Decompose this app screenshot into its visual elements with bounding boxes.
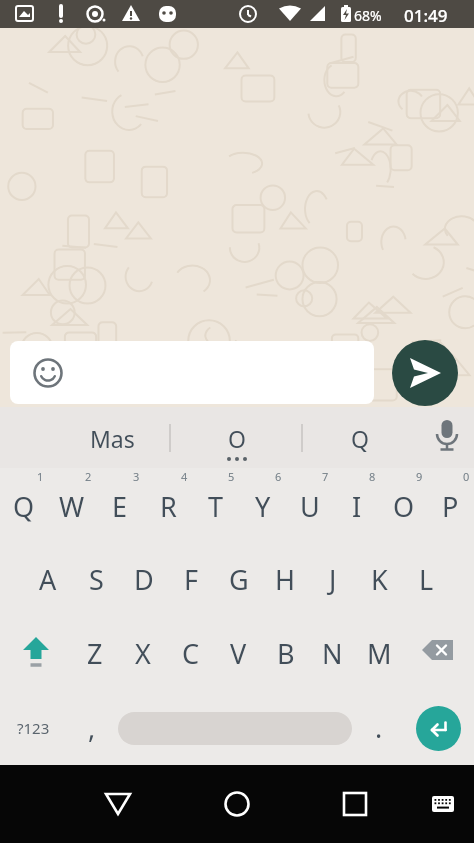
staticText: . bbox=[375, 709, 383, 746]
button[interactable] bbox=[327, 777, 383, 831]
button[interactable]: E bbox=[96, 478, 144, 534]
button[interactable]: X bbox=[119, 618, 167, 688]
button[interactable]: . bbox=[352, 690, 406, 765]
button[interactable]: W bbox=[48, 478, 96, 534]
staticText: ?123 bbox=[17, 718, 50, 738]
staticText: 01:49 bbox=[404, 4, 448, 27]
staticText: P bbox=[442, 488, 459, 525]
button[interactable] bbox=[392, 340, 458, 406]
button[interactable] bbox=[0, 618, 71, 688]
button[interactable]: N bbox=[309, 618, 356, 688]
button[interactable]: 2 bbox=[64, 468, 112, 484]
button[interactable]: B bbox=[262, 618, 309, 688]
button[interactable]: 7 bbox=[302, 468, 349, 484]
button[interactable]: J bbox=[309, 545, 356, 613]
staticText: O bbox=[393, 488, 415, 525]
staticText: X bbox=[135, 635, 151, 672]
staticText: 9 bbox=[416, 469, 423, 484]
button[interactable]: G bbox=[215, 545, 262, 613]
staticText: , bbox=[88, 709, 96, 746]
button[interactable]: Z bbox=[71, 618, 119, 688]
button[interactable]: L bbox=[403, 545, 450, 613]
button[interactable]: 4 bbox=[160, 468, 208, 484]
button[interactable]: M bbox=[356, 618, 403, 688]
button[interactable]: 9 bbox=[396, 468, 443, 484]
staticText: I bbox=[352, 488, 362, 525]
button[interactable]: 5 bbox=[208, 468, 255, 484]
staticText: N bbox=[322, 635, 343, 672]
button[interactable] bbox=[10, 341, 374, 404]
button[interactable]: V bbox=[215, 618, 262, 688]
button[interactable] bbox=[209, 777, 265, 831]
button[interactable]: K bbox=[356, 545, 403, 613]
button[interactable]: Mas bbox=[52, 415, 172, 461]
staticText: L bbox=[419, 561, 434, 598]
staticText: D bbox=[134, 561, 154, 598]
staticText: S bbox=[89, 561, 104, 598]
button[interactable]: Q bbox=[310, 415, 410, 461]
staticText: Y bbox=[255, 488, 271, 525]
staticText: 68% bbox=[354, 6, 382, 25]
button[interactable]: A bbox=[24, 545, 72, 613]
staticText: E bbox=[112, 488, 128, 525]
button[interactable]: S bbox=[72, 545, 120, 613]
button[interactable] bbox=[416, 706, 461, 751]
button[interactable]: , bbox=[66, 690, 118, 765]
button[interactable]: Q bbox=[0, 478, 48, 534]
staticText: Q bbox=[13, 488, 35, 525]
button[interactable]: F bbox=[168, 545, 215, 613]
staticText: U bbox=[300, 488, 320, 525]
button[interactable] bbox=[118, 712, 352, 745]
staticText: Z bbox=[87, 635, 103, 672]
button[interactable]: ?123 bbox=[0, 690, 66, 765]
button[interactable]: O bbox=[380, 478, 427, 534]
button[interactable]: Y bbox=[239, 478, 286, 534]
staticText: 1 bbox=[37, 469, 44, 484]
staticText: T bbox=[208, 488, 224, 525]
button[interactable]: H bbox=[262, 545, 309, 613]
staticText: 5 bbox=[228, 469, 235, 484]
staticText: 4 bbox=[181, 469, 188, 484]
staticText: Mas bbox=[90, 423, 135, 454]
button[interactable]: 3 bbox=[112, 468, 160, 484]
staticText: O bbox=[228, 423, 246, 454]
staticText: M bbox=[367, 635, 392, 672]
button[interactable]: O bbox=[183, 415, 291, 461]
button[interactable]: 8 bbox=[349, 468, 396, 484]
staticText: 3 bbox=[133, 469, 140, 484]
staticText: G bbox=[229, 561, 249, 598]
staticText: A bbox=[39, 561, 57, 598]
staticText: C bbox=[182, 635, 200, 672]
button[interactable] bbox=[423, 785, 463, 823]
button[interactable] bbox=[90, 777, 146, 831]
staticText: H bbox=[275, 561, 296, 598]
button[interactable]: 1 bbox=[16, 468, 64, 484]
button[interactable]: D bbox=[120, 545, 168, 613]
staticText: J bbox=[329, 561, 337, 598]
staticText: 6 bbox=[275, 469, 282, 484]
button[interactable]: C bbox=[167, 618, 215, 688]
button[interactable]: I bbox=[333, 478, 380, 534]
staticText: Q bbox=[351, 423, 369, 454]
staticText: R bbox=[160, 488, 177, 525]
staticText: W bbox=[59, 488, 85, 525]
button[interactable]: U bbox=[286, 478, 333, 534]
button[interactable] bbox=[425, 415, 469, 461]
staticText: 0 bbox=[463, 469, 470, 484]
button[interactable]: 0 bbox=[443, 468, 474, 484]
button[interactable]: 6 bbox=[255, 468, 302, 484]
button[interactable]: T bbox=[192, 478, 239, 534]
button[interactable]: R bbox=[144, 478, 192, 534]
button[interactable]: P bbox=[427, 478, 474, 534]
button[interactable] bbox=[403, 618, 474, 688]
staticText: F bbox=[184, 561, 199, 598]
staticText: V bbox=[230, 635, 247, 672]
staticText: 7 bbox=[322, 469, 329, 484]
staticText: B bbox=[277, 635, 295, 672]
staticText: 2 bbox=[85, 469, 92, 484]
staticText: 8 bbox=[369, 469, 376, 484]
staticText: K bbox=[371, 561, 388, 598]
